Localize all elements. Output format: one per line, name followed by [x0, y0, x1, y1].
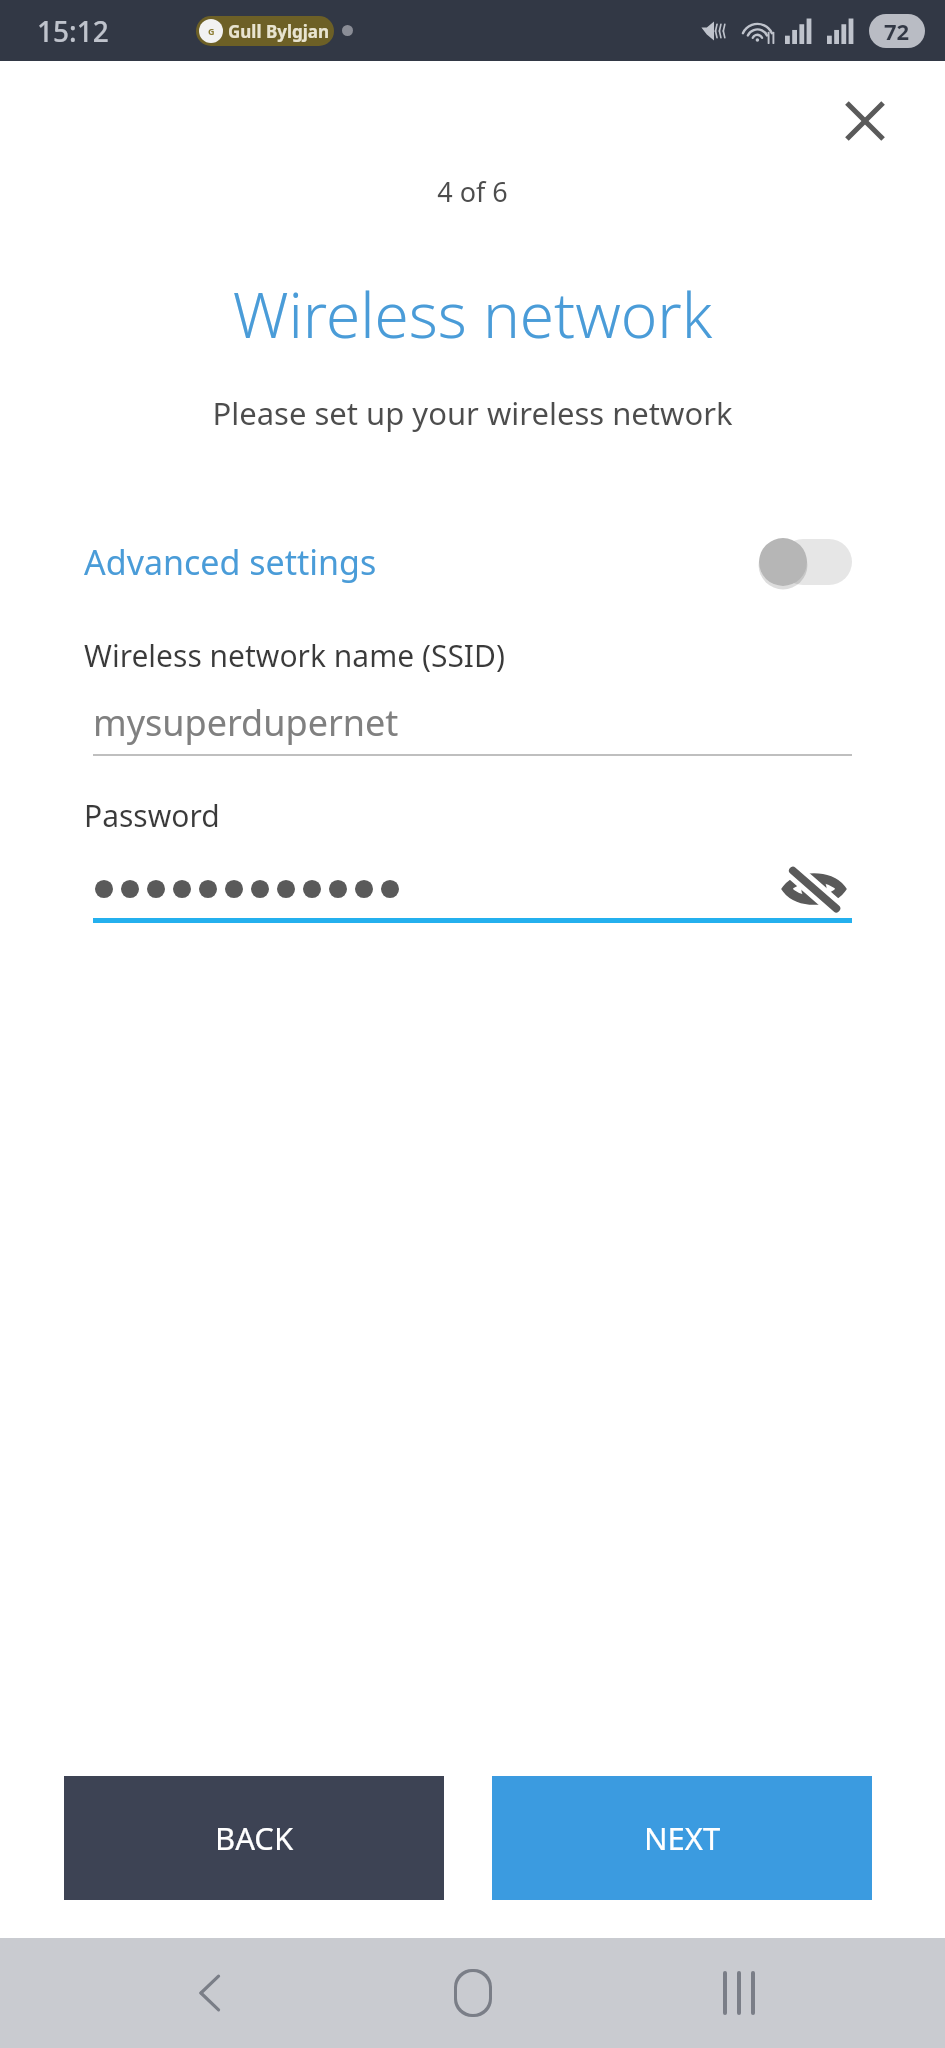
- staticText: Advanced settings: [84, 539, 377, 585]
- staticText: 4 of 6: [0, 173, 945, 210]
- staticText: Gull Bylgjan: [228, 20, 330, 43]
- staticText: BACK: [215, 1817, 294, 1859]
- button[interactable]: Recent apps: [693, 1947, 785, 2039]
- button[interactable]: Home: [427, 1947, 519, 2039]
- staticText: NEXT: [644, 1817, 721, 1859]
- button[interactable]: Close: [827, 83, 903, 159]
- staticText: 15:12: [37, 12, 109, 50]
- staticText: Wireless network: [0, 272, 945, 356]
- button[interactable]: Advanced settings: [84, 526, 852, 598]
- button[interactable]: mysuperdupernet: [93, 698, 852, 756]
- button[interactable]: Show password: [776, 862, 852, 916]
- staticText: Please set up your wireless network: [0, 392, 945, 434]
- button[interactable]: Back: [165, 1947, 257, 2039]
- staticText: Password: [84, 795, 220, 836]
- staticText: 72: [884, 16, 910, 46]
- button[interactable]: BACK: [64, 1776, 444, 1900]
- button[interactable]: NEXT: [492, 1776, 872, 1900]
- staticText: Wireless network name (SSID): [84, 635, 505, 676]
- staticText: mysuperdupernet: [93, 698, 399, 747]
- staticText: G: [208, 25, 215, 37]
